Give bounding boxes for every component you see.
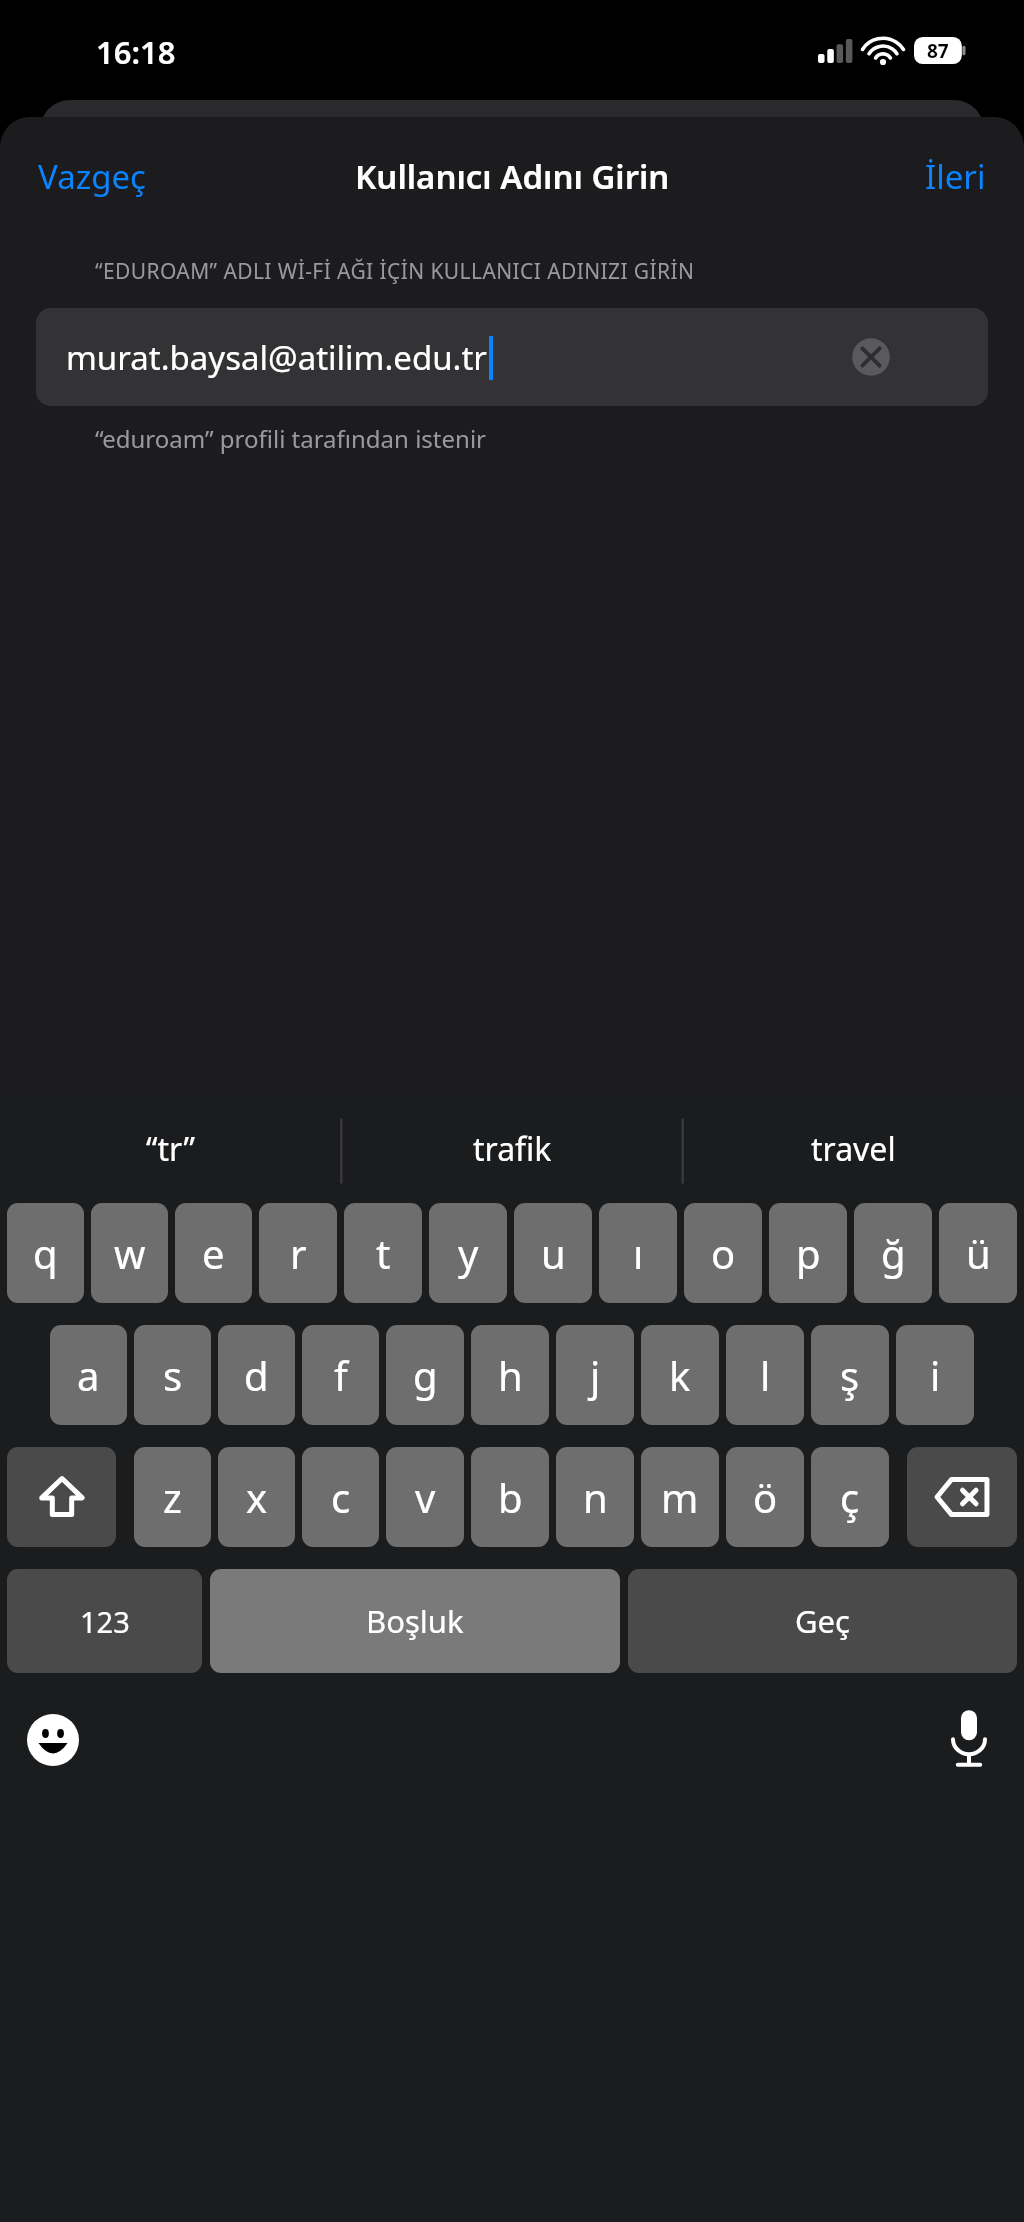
button[interactable]: Sil <box>907 1447 1017 1547</box>
staticText: murat.baysal@atilim.edu.tr <box>66 335 487 380</box>
staticText: ç <box>840 1470 860 1524</box>
button[interactable]: s <box>134 1325 211 1425</box>
staticText: trafik <box>473 1127 552 1171</box>
button[interactable]: x <box>218 1447 295 1547</box>
button[interactable]: o <box>684 1203 762 1303</box>
staticText: e <box>202 1226 225 1280</box>
staticText: Geç <box>795 1600 850 1642</box>
staticText: 123 <box>80 1602 130 1641</box>
staticText: r <box>290 1226 307 1280</box>
button[interactable]: ğ <box>854 1203 932 1303</box>
button[interactable]: Geç <box>628 1569 1017 1673</box>
staticText: l <box>760 1348 771 1402</box>
button[interactable]: a <box>50 1325 127 1425</box>
button[interactable]: m <box>641 1447 719 1547</box>
button[interactable]: e <box>175 1203 252 1303</box>
staticText: ş <box>840 1348 860 1402</box>
button[interactable]: Temizle <box>849 335 893 379</box>
button[interactable]: Vazgeç <box>0 140 166 213</box>
button[interactable]: y <box>429 1203 507 1303</box>
staticText: i <box>930 1348 941 1402</box>
staticText: m <box>661 1470 699 1524</box>
staticText: x <box>246 1470 268 1524</box>
button[interactable]: h <box>471 1325 549 1425</box>
staticText: ğ <box>881 1226 906 1280</box>
staticText: z <box>163 1470 182 1524</box>
button[interactable]: n <box>556 1447 634 1547</box>
staticText: g <box>413 1348 438 1402</box>
staticText: y <box>458 1226 479 1280</box>
button[interactable]: ü <box>939 1203 1017 1303</box>
staticText: k <box>669 1348 691 1402</box>
staticText: “tr” <box>146 1127 196 1171</box>
staticText: c <box>331 1470 351 1524</box>
button[interactable]: c <box>302 1447 379 1547</box>
button[interactable]: p <box>769 1203 847 1303</box>
button[interactable]: ç <box>811 1447 889 1547</box>
button[interactable]: f <box>302 1325 379 1425</box>
staticText: İleri <box>925 154 986 199</box>
button[interactable]: Dikte <box>938 1707 1000 1769</box>
button[interactable]: j <box>556 1325 634 1425</box>
staticText: 16:18 <box>96 31 176 73</box>
button[interactable]: v <box>386 1447 464 1547</box>
staticText: j <box>590 1348 601 1402</box>
staticText: f <box>334 1348 348 1402</box>
button[interactable]: d <box>218 1325 295 1425</box>
staticText: d <box>244 1348 269 1402</box>
staticText: u <box>541 1226 566 1280</box>
button[interactable]: g <box>386 1325 464 1425</box>
button[interactable]: trafik <box>342 1095 683 1203</box>
button[interactable]: Boşluk <box>210 1569 620 1673</box>
button[interactable]: murat.baysal@atilim.edu.tr <box>36 308 988 406</box>
button[interactable]: b <box>471 1447 549 1547</box>
staticText: h <box>498 1348 523 1402</box>
button[interactable]: r <box>259 1203 337 1303</box>
button[interactable]: q <box>7 1203 84 1303</box>
staticText: Vazgeç <box>38 154 146 199</box>
staticText: “eduroam” profili tarafından istenir <box>95 422 486 455</box>
staticText: p <box>796 1226 821 1280</box>
staticText: o <box>711 1226 736 1280</box>
staticText: s <box>163 1348 183 1402</box>
button[interactable]: “tr” <box>0 1095 342 1203</box>
staticText: w <box>114 1226 146 1280</box>
button[interactable]: w <box>91 1203 168 1303</box>
staticText: 87 <box>927 38 949 64</box>
staticText: t <box>376 1226 391 1280</box>
button[interactable]: Shift <box>7 1447 116 1547</box>
staticText: Kullanıcı Adını Girin <box>355 154 670 199</box>
button[interactable]: i <box>896 1325 974 1425</box>
staticText: v <box>415 1470 436 1524</box>
staticText: travel <box>811 1127 896 1171</box>
button[interactable]: ş <box>811 1325 889 1425</box>
staticText: ü <box>966 1226 991 1280</box>
button[interactable]: Emoji <box>22 1709 84 1771</box>
button[interactable]: u <box>514 1203 592 1303</box>
staticText: q <box>33 1226 58 1280</box>
button[interactable]: 123 <box>7 1569 202 1673</box>
button[interactable]: ı <box>599 1203 677 1303</box>
button[interactable]: z <box>134 1447 211 1547</box>
button[interactable]: k <box>641 1325 719 1425</box>
staticText: “EDUROAM” ADLI Wİ-Fİ AĞI İÇİN KULLANICI … <box>95 257 695 286</box>
staticText: Boşluk <box>366 1600 464 1642</box>
button[interactable]: l <box>726 1325 804 1425</box>
button[interactable]: travel <box>683 1095 1024 1203</box>
staticText: b <box>498 1470 523 1524</box>
staticText: ı <box>633 1226 644 1280</box>
button[interactable]: İleri <box>905 140 1024 213</box>
button[interactable]: ö <box>726 1447 804 1547</box>
staticText: n <box>583 1470 608 1524</box>
button[interactable]: t <box>344 1203 422 1303</box>
staticText: ö <box>753 1470 778 1524</box>
staticText: a <box>77 1348 100 1402</box>
